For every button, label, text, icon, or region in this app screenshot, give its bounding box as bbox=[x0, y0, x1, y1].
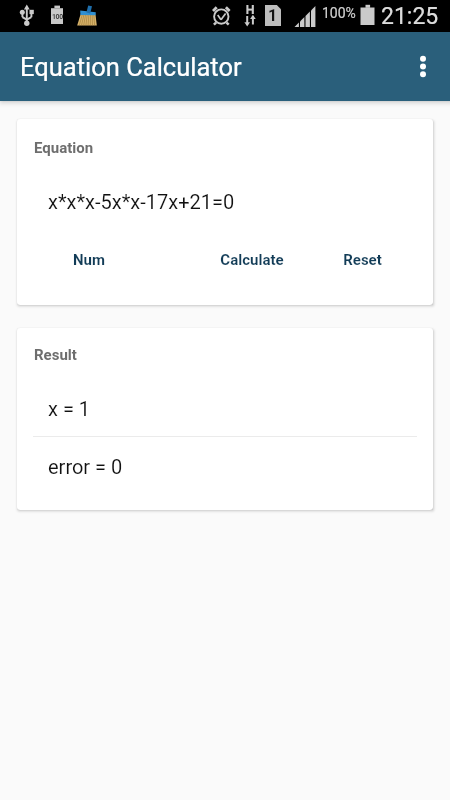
staticText: Result bbox=[34, 346, 77, 364]
staticText: 100 bbox=[52, 13, 63, 21]
button[interactable]: Calculate bbox=[201, 243, 302, 277]
staticText: 1 bbox=[268, 6, 278, 25]
staticText: x = 1 bbox=[48, 397, 91, 420]
staticText: Reset bbox=[343, 251, 382, 269]
staticText: Equation bbox=[34, 139, 94, 157]
staticText: 100% bbox=[322, 5, 356, 21]
staticText: Num bbox=[73, 251, 105, 269]
button[interactable]: Reset bbox=[317, 243, 407, 277]
staticText: Equation Calculator bbox=[20, 52, 242, 82]
button[interactable]: More options bbox=[401, 45, 445, 89]
staticText: 21:25 bbox=[381, 3, 439, 30]
staticText: Calculate bbox=[220, 251, 284, 269]
staticText: x*x*x-5x*x-17x+21=0 bbox=[48, 190, 235, 213]
staticText: error = 0 bbox=[48, 455, 123, 478]
button[interactable]: Num bbox=[39, 243, 139, 277]
